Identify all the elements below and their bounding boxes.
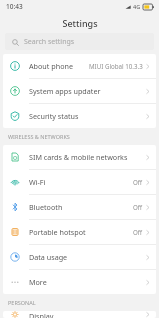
staticText: MIUI Global 10.3.3 [89, 62, 143, 70]
staticText: Off [133, 178, 143, 186]
staticText: Off [133, 203, 143, 211]
other: Data usage [10, 252, 20, 262]
button[interactable]: Portable hotspot [3, 220, 156, 244]
button[interactable]: Display [3, 311, 156, 318]
other: More [10, 277, 20, 287]
button[interactable]: More [3, 270, 156, 294]
staticText: Wi-Fi [29, 177, 133, 187]
staticText: Search settings [24, 37, 75, 47]
other: Bluetooth [10, 202, 20, 212]
other: Wi-Fi [10, 177, 20, 187]
other: Portable hotspot [10, 227, 20, 237]
staticText: 4G [133, 3, 141, 10]
staticText: Data usage [29, 252, 146, 262]
staticText: Settings [62, 17, 98, 29]
button[interactable]: Security status [3, 104, 156, 128]
staticText: Bluetooth [29, 202, 133, 212]
staticText: Security status [29, 111, 146, 121]
other: SIM cards and mobile networks [10, 152, 20, 162]
button[interactable]: About phone [3, 54, 156, 78]
other: Display [10, 311, 20, 318]
button[interactable]: Search settings [5, 33, 154, 50]
staticText: SIM cards & mobile networks [29, 152, 146, 162]
staticText: About phone [29, 61, 89, 71]
button[interactable]: Data usage [3, 245, 156, 269]
other: System apps updater [10, 86, 20, 96]
staticText: 10:43 [6, 2, 23, 11]
staticText: Display [29, 311, 146, 318]
button[interactable]: System apps updater [3, 79, 156, 103]
staticText: More [29, 277, 146, 287]
other: Security status [10, 111, 20, 121]
staticText: PERSONAL [8, 299, 36, 306]
staticText: System apps updater [29, 86, 146, 96]
staticText: WIRELESS & NETWORKS [8, 133, 70, 140]
button[interactable]: Bluetooth [3, 195, 156, 219]
staticText: Portable hotspot [29, 227, 133, 237]
other: About phone [10, 61, 20, 71]
button[interactable]: SIM cards and mobile networks [3, 145, 156, 169]
staticText: Off [133, 228, 143, 236]
button[interactable]: Wi-Fi [3, 170, 156, 194]
